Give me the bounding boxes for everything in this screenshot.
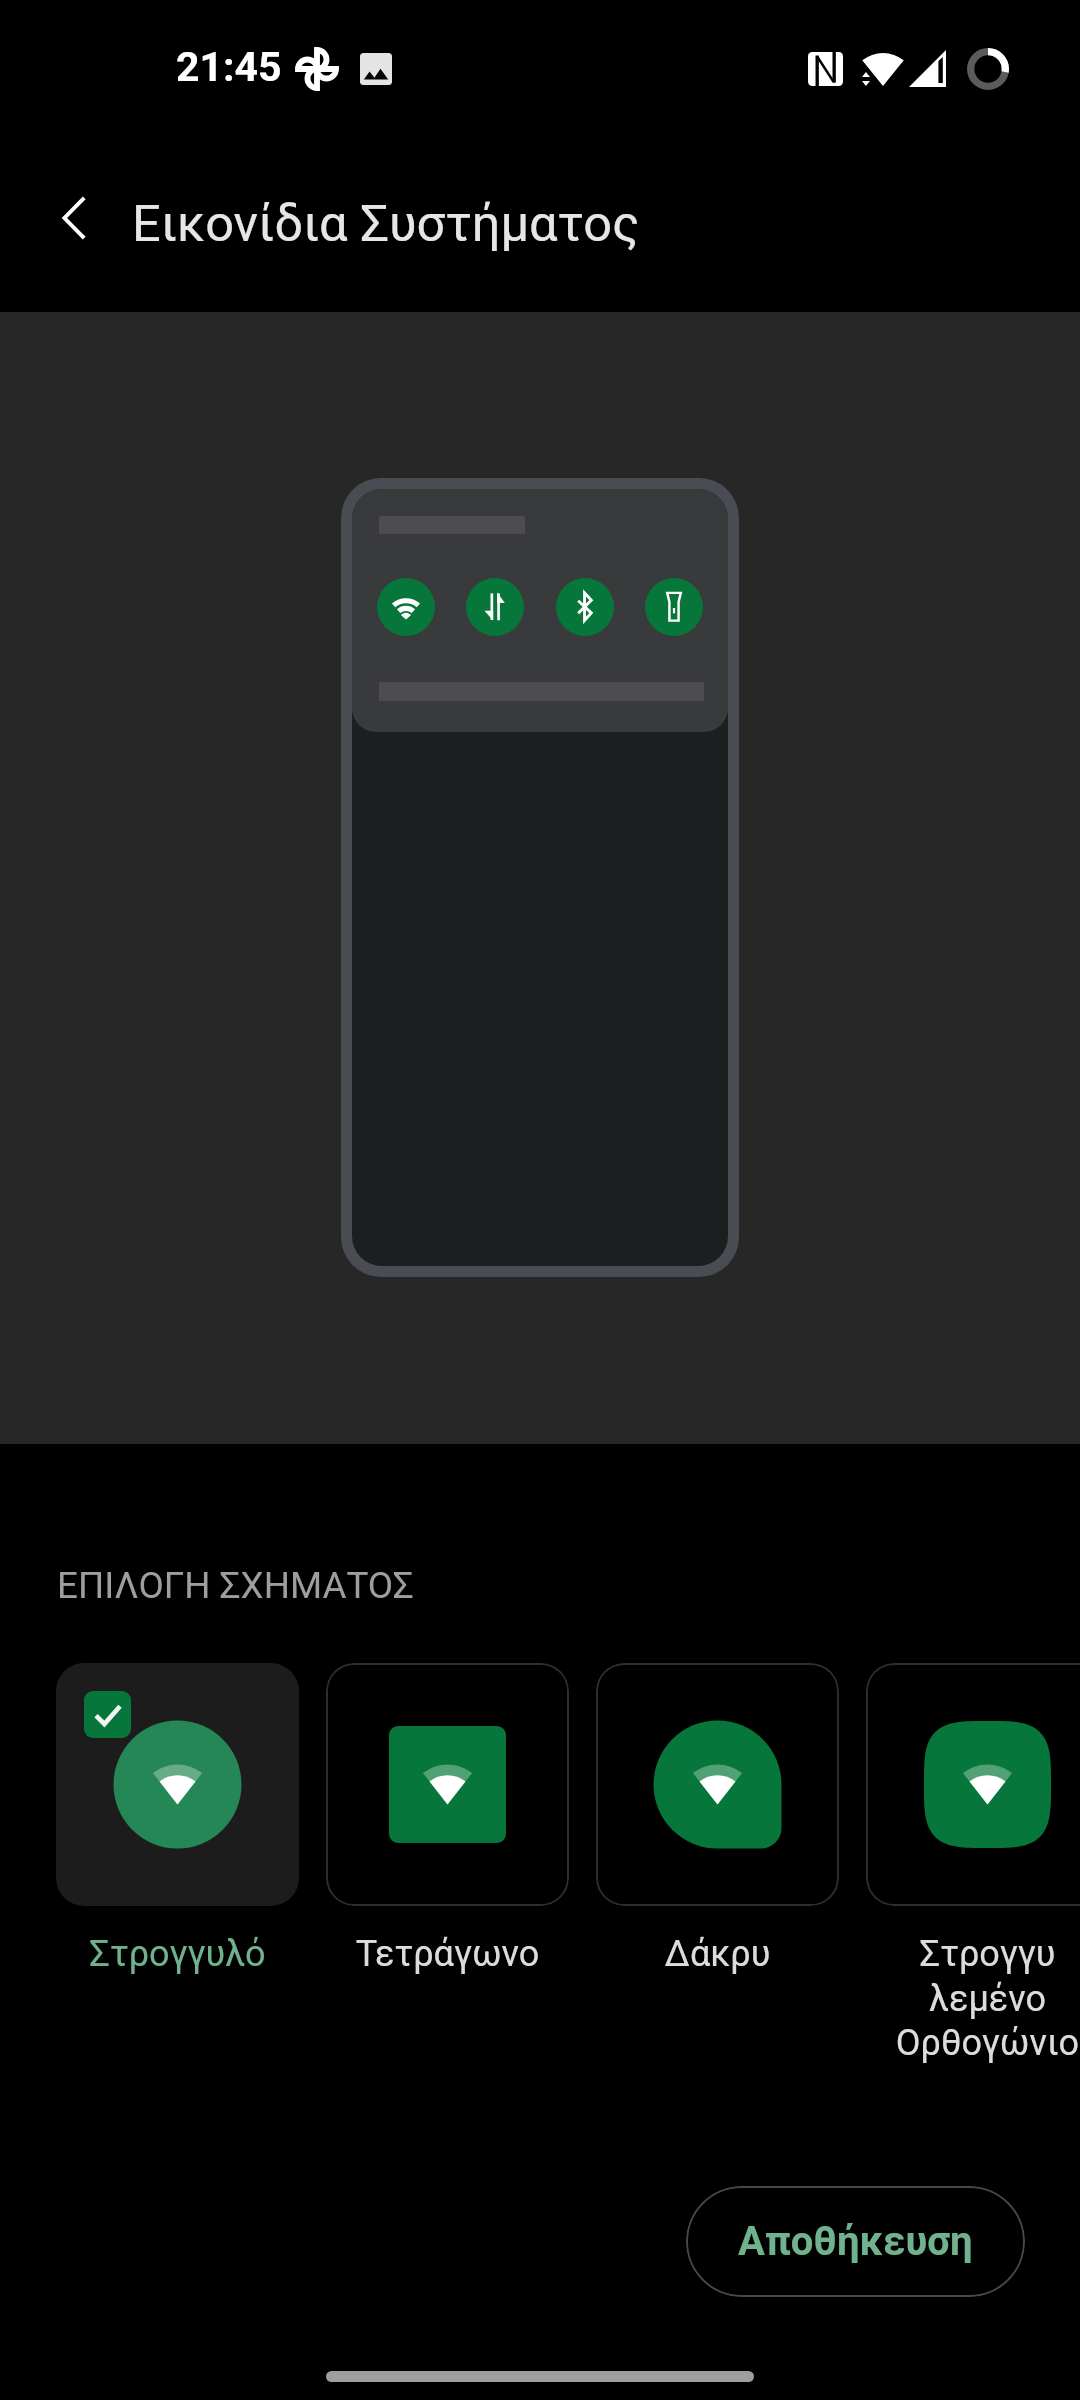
staticText: Αποθήκευση bbox=[738, 2218, 973, 2265]
button[interactable]: Τετράγωνο bbox=[326, 1663, 569, 1975]
button[interactable]: ΣτρογγυλεμένοΟρθογώνιο bbox=[866, 1663, 1080, 2064]
staticText: Στρογγυ λεμένο Ορθογώνιο bbox=[866, 1933, 1080, 2064]
button[interactable]: Στρογγυλό bbox=[56, 1663, 299, 1975]
button[interactable]: Back bbox=[31, 174, 119, 262]
button[interactable]: Flashlight bbox=[645, 578, 703, 636]
staticText: 21:45 bbox=[176, 43, 282, 91]
staticText: Στρογγυλό bbox=[56, 1933, 299, 1975]
staticText: Εικονίδια Συστήματος bbox=[132, 194, 640, 253]
button[interactable]: Mobile data bbox=[466, 578, 524, 636]
staticText: ΕΠΙΛΟΓΗ ΣΧΗΜΑΤΟΣ bbox=[57, 1564, 414, 1607]
button[interactable]: Δάκρυ bbox=[596, 1663, 839, 1975]
button[interactable]: Bluetooth bbox=[556, 578, 614, 636]
staticText: Τετράγωνο bbox=[326, 1933, 569, 1975]
button[interactable]: Αποθήκευση bbox=[686, 2186, 1025, 2297]
button[interactable]: Wi-Fi bbox=[377, 578, 435, 636]
staticText: Δάκρυ bbox=[596, 1933, 839, 1975]
